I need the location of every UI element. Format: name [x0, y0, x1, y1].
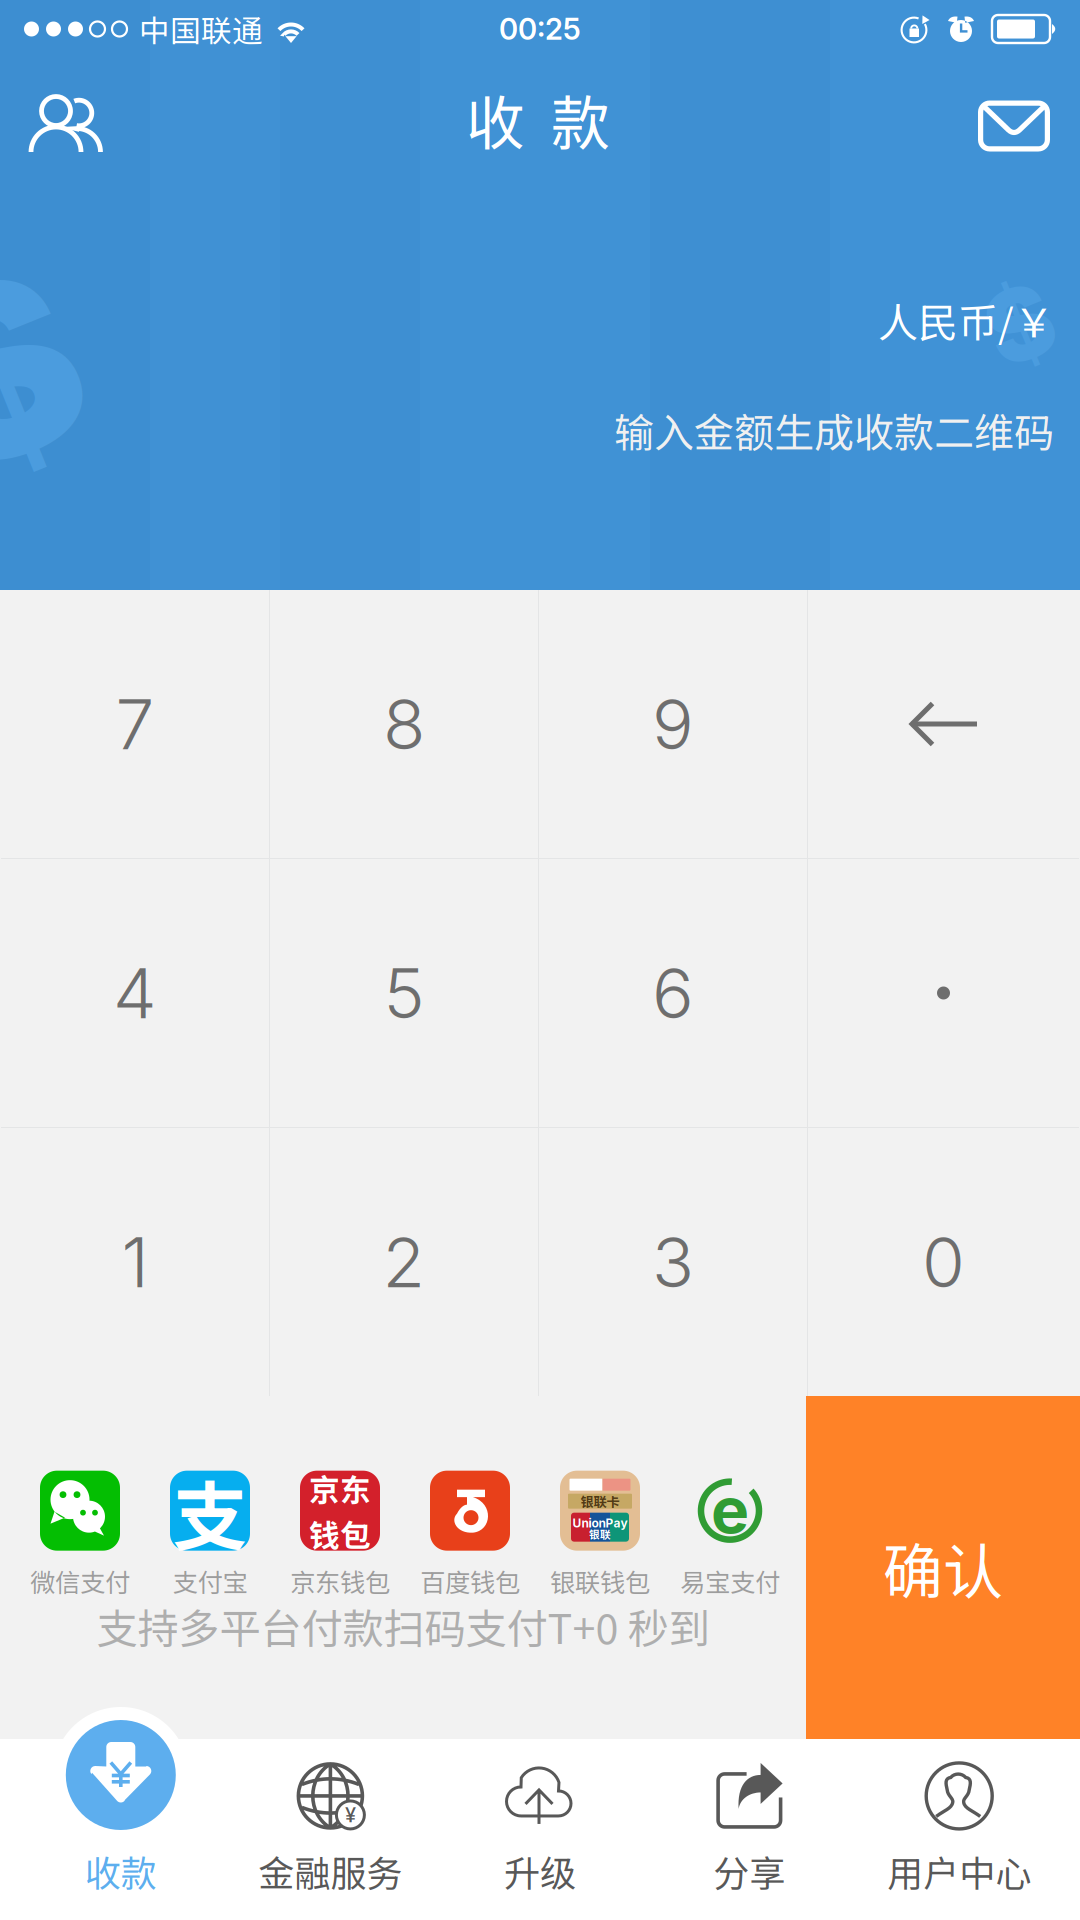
- button[interactable]: 6: [539, 859, 807, 1127]
- button[interactable]: 8: [270, 590, 538, 858]
- button[interactable]: 百度钱包: [405, 1471, 535, 1599]
- staticText: 3: [652, 1220, 694, 1304]
- staticText: 银联卡: [580, 1491, 619, 1511]
- staticText: 支付宝: [172, 1563, 247, 1599]
- staticText: UnionPay: [572, 1516, 627, 1530]
- button[interactable]: e: [665, 1471, 795, 1599]
- staticText: 输入金额生成收款二维码: [614, 401, 1054, 459]
- staticText: 6: [652, 951, 694, 1035]
- staticText: 百度钱包: [420, 1563, 520, 1599]
- button[interactable]: 分享: [645, 1739, 854, 1920]
- button[interactable]: [808, 859, 1079, 1127]
- staticText: 收款: [85, 1845, 157, 1897]
- staticText: ¥: [345, 1803, 356, 1827]
- button[interactable]: 支: [145, 1471, 275, 1599]
- staticText: 钱包: [309, 1511, 371, 1556]
- staticText: 支持多平台付款扫码支付T+0 秒到: [96, 1596, 709, 1656]
- staticText: 00:25: [499, 11, 581, 47]
- staticText: 7: [115, 682, 154, 766]
- button[interactable]: Contacts: [0, 72, 128, 166]
- staticText: 分享: [714, 1845, 786, 1897]
- staticText: 金融服务: [258, 1845, 402, 1897]
- staticText: 微信支付: [30, 1563, 130, 1599]
- button[interactable]: 用户中心: [854, 1739, 1064, 1920]
- staticText: 京东钱包: [290, 1563, 390, 1599]
- staticText: 5: [383, 951, 424, 1035]
- button[interactable]: 4: [1, 859, 269, 1127]
- staticText: 1: [121, 1220, 148, 1304]
- staticText: 确认: [883, 1524, 1003, 1611]
- staticText: 银联钱包: [550, 1563, 650, 1599]
- staticText: 收 款: [466, 76, 610, 161]
- button[interactable]: 0: [808, 1128, 1079, 1396]
- staticText: $: [987, 264, 1053, 384]
- button[interactable]: Messages: [948, 71, 1080, 166]
- button[interactable]: 9: [539, 590, 807, 858]
- button[interactable]: 确认: [806, 1396, 1080, 1739]
- button[interactable]: 收款: [16, 1707, 226, 1843]
- staticText: 用户中心: [887, 1845, 1031, 1897]
- staticText: $: [0, 226, 77, 514]
- staticText: 4: [113, 951, 157, 1035]
- staticText: 银联: [589, 1526, 611, 1542]
- button[interactable]: 2: [270, 1128, 538, 1396]
- button[interactable]: 京东: [275, 1471, 405, 1599]
- staticText: 京东: [309, 1466, 371, 1510]
- staticText: 中国联通: [139, 7, 263, 51]
- button[interactable]: 升级: [435, 1739, 645, 1920]
- staticText: 人民币/￥: [878, 291, 1054, 349]
- button[interactable]: ¥: [226, 1739, 435, 1920]
- staticText: e: [711, 1471, 749, 1548]
- button[interactable]: 3: [539, 1128, 807, 1396]
- button[interactable]: 7: [1, 590, 269, 858]
- staticText: 升级: [504, 1845, 576, 1897]
- button[interactable]: 微信支付: [15, 1471, 145, 1599]
- button[interactable]: 银联卡: [535, 1471, 665, 1599]
- staticText: 易宝支付: [680, 1563, 780, 1599]
- button[interactable]: [808, 590, 1079, 858]
- button[interactable]: 1: [1, 1128, 269, 1396]
- staticText: 8: [383, 682, 425, 766]
- button[interactable]: 收款: [16, 1739, 226, 1920]
- staticText: 支: [172, 1458, 247, 1566]
- staticText: 9: [652, 682, 694, 766]
- staticText: 0: [922, 1220, 965, 1304]
- button[interactable]: 5: [270, 859, 538, 1127]
- staticText: 2: [382, 1220, 425, 1304]
